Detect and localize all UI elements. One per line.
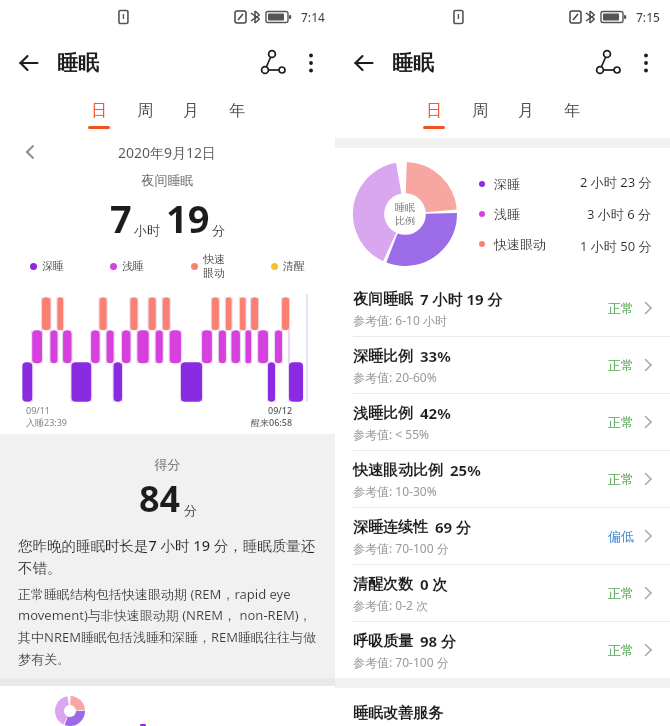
button[interactable]: 快速眼动比例	[335, 451, 670, 507]
button[interactable]: Share	[588, 43, 628, 83]
button[interactable]: 月	[168, 92, 214, 138]
button[interactable]: More options	[293, 45, 329, 81]
staticText: 清醒	[283, 259, 305, 273]
staticText: 浅睡	[494, 206, 520, 222]
staticText: 7	[110, 192, 132, 244]
staticText: 小时	[134, 222, 160, 238]
staticText: 正常	[608, 300, 634, 316]
staticText: 浅睡比例	[353, 404, 413, 423]
staticText: 正常	[608, 642, 634, 658]
staticText: 分	[212, 222, 225, 238]
staticText: 眼动	[203, 266, 225, 280]
staticText: 19	[166, 192, 210, 244]
staticText: 日	[91, 101, 107, 121]
staticText: 深睡连续性	[353, 518, 428, 537]
staticText: 参考值: 10-30%	[353, 483, 437, 499]
staticText: 深睡	[494, 176, 520, 192]
staticText: 夜间睡眠	[353, 290, 413, 309]
button[interactable]: 夜间睡眠	[335, 280, 670, 336]
staticText: 睡眠	[57, 50, 99, 76]
button[interactable]: More options	[628, 45, 664, 81]
staticText: 浅睡	[122, 259, 144, 273]
staticText: 深睡	[42, 259, 64, 273]
staticText: 正常	[608, 414, 634, 430]
staticText: 日	[426, 101, 442, 121]
staticText: 参考值: 70-100 分	[353, 540, 449, 556]
staticText: 09/12	[268, 404, 293, 416]
staticText: 入睡23:39	[26, 416, 68, 428]
staticText: 42%	[420, 403, 451, 423]
staticText: 比例	[395, 214, 415, 227]
button[interactable]: 日	[411, 92, 457, 138]
button[interactable]: 年	[214, 92, 260, 138]
staticText: 快速眼动比例	[353, 461, 443, 480]
button[interactable]: Share	[253, 43, 293, 83]
staticText: 快速眼动	[494, 236, 546, 252]
button[interactable]: 深睡连续性	[335, 508, 670, 564]
button[interactable]: 年	[549, 92, 595, 138]
staticText: 周	[472, 101, 488, 121]
staticText: 参考值: < 55%	[353, 426, 430, 442]
staticText: 7:15	[636, 9, 660, 25]
staticText: 周	[137, 101, 153, 121]
staticText: 偏低	[608, 528, 634, 544]
staticText: 深睡比例	[353, 347, 413, 366]
button[interactable]: Previous day	[18, 140, 42, 164]
staticText: 33%	[420, 346, 451, 366]
staticText: 清醒次数	[353, 575, 413, 594]
staticText: 2 小时 23 分	[580, 173, 652, 191]
button[interactable]: Back	[347, 46, 381, 80]
button[interactable]: 清醒次数	[335, 565, 670, 621]
staticText: 参考值: 70-100 分	[353, 654, 449, 670]
staticText: 69 分	[435, 517, 472, 537]
staticText: 2020年9月12日	[118, 143, 217, 162]
button[interactable]: 月	[503, 92, 549, 138]
staticText: 84	[139, 474, 181, 523]
staticText: 参考值: 0-2 次	[353, 597, 429, 613]
staticText: 25%	[450, 460, 481, 480]
staticText: 正常	[608, 357, 634, 373]
staticText: 睡眠改善服务	[353, 704, 443, 723]
button[interactable]: 周	[122, 92, 168, 138]
staticText: 快速	[203, 252, 225, 266]
staticText: 98 分	[420, 631, 457, 651]
staticText: 7 小时 19 分	[420, 289, 503, 309]
staticText: 09/11	[26, 404, 50, 416]
staticText: 正常睡眠结构包括快速眼动期 (REM，rapid eye movement)与非…	[18, 585, 317, 668]
staticText: 月	[183, 101, 199, 121]
staticText: 1 小时 50 分	[580, 237, 652, 255]
staticText: 3 小时 6 分	[587, 205, 652, 223]
staticText: 参考值: 20-60%	[353, 369, 437, 385]
button[interactable]: 浅睡比例	[335, 394, 670, 450]
button[interactable]: Back	[12, 46, 46, 80]
staticText: 呼吸质量	[353, 632, 413, 651]
button[interactable]: 深睡比例	[335, 337, 670, 393]
button[interactable]: 周	[457, 92, 503, 138]
staticText: 年	[229, 101, 245, 121]
button[interactable]: 日	[76, 92, 122, 138]
staticText: 正常	[608, 471, 634, 487]
staticText: 年	[564, 101, 580, 121]
staticText: 睡眠	[392, 50, 434, 76]
staticText: 夜间睡眠	[0, 172, 335, 188]
staticText: 0 次	[420, 574, 448, 594]
staticText: 正常	[608, 585, 634, 601]
staticText: 醒来06:58	[251, 416, 293, 428]
staticText: 月	[518, 101, 534, 121]
staticText: 得分	[0, 456, 335, 472]
staticText: 7:14	[301, 9, 325, 25]
staticText: 分	[184, 502, 197, 518]
button[interactable]: 呼吸质量	[335, 622, 670, 678]
staticText: 您昨晚的睡眠时长是7 小时 19 分，睡眠质量还不错。	[18, 535, 317, 577]
staticText: 参考值: 6-10 小时	[353, 312, 447, 328]
staticText: 睡眠	[395, 201, 415, 214]
